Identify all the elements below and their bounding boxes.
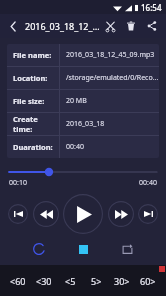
staticText: Duaration: [13,142,53,152]
button[interactable]: Share [143,17,161,35]
staticText: 00:40 [66,142,84,152]
button[interactable]: <5 [57,265,83,296]
button[interactable]: Delete [122,17,140,35]
staticText: File name: [13,50,52,60]
button[interactable]: Loop [118,240,136,258]
staticText: Location: [13,73,48,83]
staticText: <5 [65,275,76,287]
staticText: 2016_03_18 [66,119,105,129]
button[interactable]: 30> [109,265,135,296]
staticText: 00:10 [9,178,27,188]
staticText: <60 [10,275,26,287]
button[interactable]: Fast forward [108,201,134,227]
staticText: 20 MB [66,96,87,106]
staticText: 16:54 [141,2,162,13]
staticText: File size: [13,96,45,106]
button[interactable]: <60 [5,265,31,296]
staticText: /storage/emulated/0/Recorders/ [66,73,159,83]
button[interactable]: Replay [30,240,48,258]
staticText: 5> [91,275,102,287]
button[interactable]: 5> [83,265,109,296]
button[interactable]: <30 [31,265,57,296]
staticText: 00:40 [139,178,157,188]
staticText: Create time: [13,114,59,134]
staticText: 2016_03_18_12_45_09.mp3 [66,50,155,60]
button[interactable]: Previous [8,204,28,224]
button[interactable]: Play [63,194,103,234]
staticText: 30> [114,275,130,287]
button[interactable]: 60> [135,265,161,296]
button[interactable]: Back [5,18,21,34]
staticText: 60> [140,275,156,287]
button[interactable]: Rewind [33,201,59,227]
button[interactable]: Cut [101,17,119,35]
staticText: 2016_03_18_12_45_... [25,20,101,32]
button[interactable]: Stop [74,240,92,258]
staticText: <30 [36,275,52,287]
button[interactable]: Next [138,204,158,224]
